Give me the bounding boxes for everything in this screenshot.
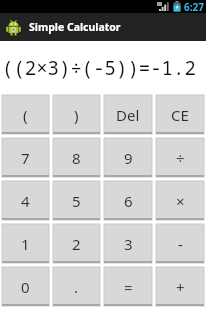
button[interactable]: 8	[53, 138, 100, 177]
staticText: +	[176, 277, 185, 297]
button[interactable]: 5	[53, 181, 100, 220]
staticText: .	[74, 277, 79, 297]
button[interactable]: +	[156, 267, 204, 306]
staticText: 0	[21, 277, 30, 297]
button[interactable]: ÷	[156, 138, 204, 177]
button[interactable]: 1	[2, 224, 49, 263]
staticText: 1	[21, 234, 30, 254]
staticText: 3	[124, 234, 133, 254]
button[interactable]: 7	[2, 138, 49, 177]
button[interactable]: =	[104, 267, 152, 306]
staticText: 8	[72, 148, 81, 168]
button[interactable]: ×	[156, 181, 204, 220]
staticText: 6:27	[184, 0, 204, 13]
button[interactable]: 9	[104, 138, 152, 177]
staticText: 4	[21, 191, 30, 211]
button[interactable]: -	[156, 224, 204, 263]
staticText: =	[124, 277, 133, 297]
staticText: ×	[176, 191, 185, 211]
button[interactable]: CE	[156, 95, 204, 134]
button[interactable]: 6	[104, 181, 152, 220]
staticText: 5	[72, 191, 81, 211]
button[interactable]: )	[53, 95, 100, 134]
staticText: )	[74, 105, 79, 125]
staticText: 2	[72, 234, 81, 254]
staticText: ÷	[176, 148, 185, 168]
staticText: Simple Calculator	[29, 20, 121, 34]
button[interactable]: Del	[104, 95, 152, 134]
staticText: Del	[116, 105, 140, 125]
staticText: (	[23, 105, 28, 125]
staticText: 7	[21, 148, 30, 168]
staticText: CE	[171, 105, 189, 125]
button[interactable]: .	[53, 267, 100, 306]
staticText: 9	[124, 148, 133, 168]
staticText: 6	[124, 191, 133, 211]
button[interactable]: (	[2, 95, 49, 134]
button[interactable]: 4	[2, 181, 49, 220]
staticText: ((2×3)÷(-5))=-1.2	[2, 55, 196, 81]
button[interactable]: 3	[104, 224, 152, 263]
button[interactable]: 0	[2, 267, 49, 306]
button[interactable]: 2	[53, 224, 100, 263]
staticText: -	[178, 234, 183, 254]
